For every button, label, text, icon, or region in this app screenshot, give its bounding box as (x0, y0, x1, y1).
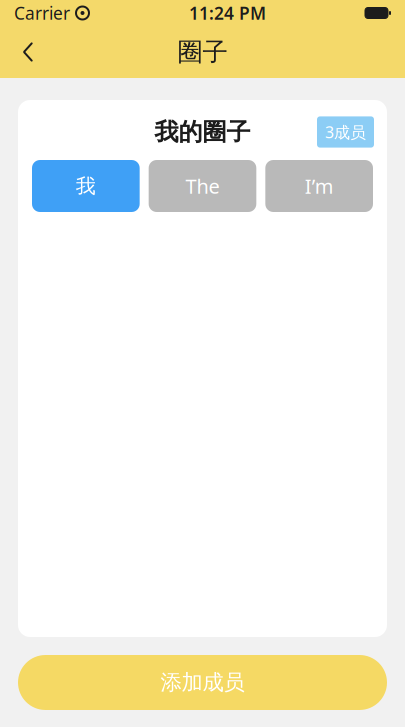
staticText: 圈子 (177, 36, 227, 67)
staticText: 我 (76, 174, 96, 198)
button[interactable]: 我 (32, 160, 140, 212)
button[interactable]: I’m (265, 160, 373, 212)
button[interactable]: Back (6, 30, 50, 74)
button[interactable]: The (149, 160, 256, 212)
staticText: The (185, 173, 219, 199)
button[interactable]: 添加成员 (18, 655, 387, 710)
button[interactable]: 3成员 (317, 116, 374, 148)
staticText: I’m (305, 173, 334, 199)
staticText: 我的圈子 (154, 117, 250, 147)
staticText: Carrier (14, 1, 70, 24)
staticText: 11:24 PM (189, 1, 266, 24)
staticText: 添加成员 (160, 669, 244, 696)
staticText: 3成员 (325, 121, 366, 143)
